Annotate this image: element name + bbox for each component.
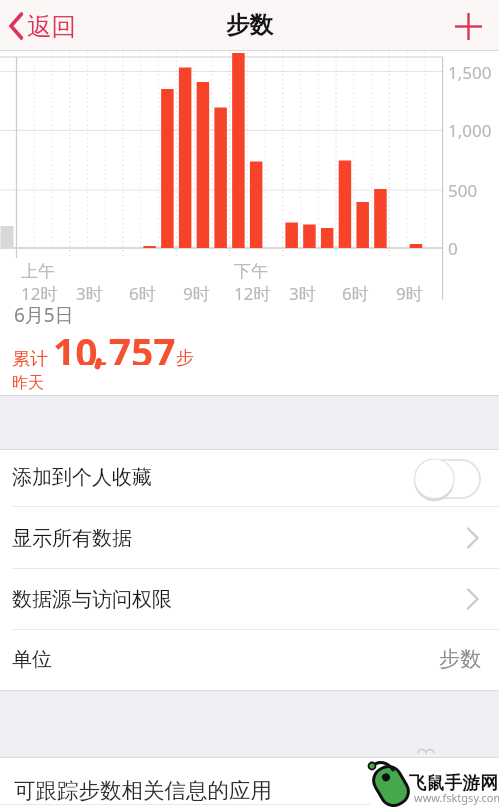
staticText: 12时 <box>21 282 58 305</box>
staticText: 3时 <box>76 282 103 305</box>
staticText: 上午 <box>21 261 55 282</box>
button[interactable]: 返回 <box>4 6 94 46</box>
staticText: 飞鼠手游网 <box>409 772 498 794</box>
button[interactable] <box>0 630 499 690</box>
staticText: 昨天 <box>12 373 44 393</box>
button[interactable] <box>414 459 481 499</box>
staticText: 9时 <box>396 282 423 305</box>
staticText: 数据源与访问权限 <box>12 587 172 612</box>
button[interactable] <box>0 569 499 629</box>
staticText: 下午 <box>234 261 268 282</box>
staticText: www.fsktgsy.com <box>414 790 499 805</box>
staticText: 显示所有数据 <box>12 526 132 551</box>
staticText: 可跟踪步数相关信息的应用 <box>14 777 272 804</box>
staticText: 单位 <box>12 647 52 672</box>
staticText: 步 <box>176 347 194 370</box>
staticText: 6月5日 <box>14 302 74 328</box>
staticText: 6时 <box>342 282 369 305</box>
staticText: 步数 <box>439 646 481 672</box>
staticText: 步数 <box>226 10 273 40</box>
staticText: 3时 <box>289 282 316 305</box>
staticText: 返回 <box>27 11 76 42</box>
button[interactable] <box>0 507 499 568</box>
staticText: 0 <box>448 237 458 260</box>
staticText: 添加到个人收藏 <box>12 465 152 490</box>
staticText: 500 <box>448 179 478 202</box>
button[interactable] <box>0 450 499 506</box>
staticText: 12时 <box>234 282 271 305</box>
staticText: 9时 <box>183 282 210 305</box>
staticText: 6时 <box>129 282 156 305</box>
button[interactable] <box>446 4 491 48</box>
staticText: 1,500 <box>448 61 492 84</box>
staticText: 10,757 <box>53 325 176 365</box>
staticText: 1,000 <box>448 119 492 142</box>
staticText: 累计 <box>12 348 48 371</box>
